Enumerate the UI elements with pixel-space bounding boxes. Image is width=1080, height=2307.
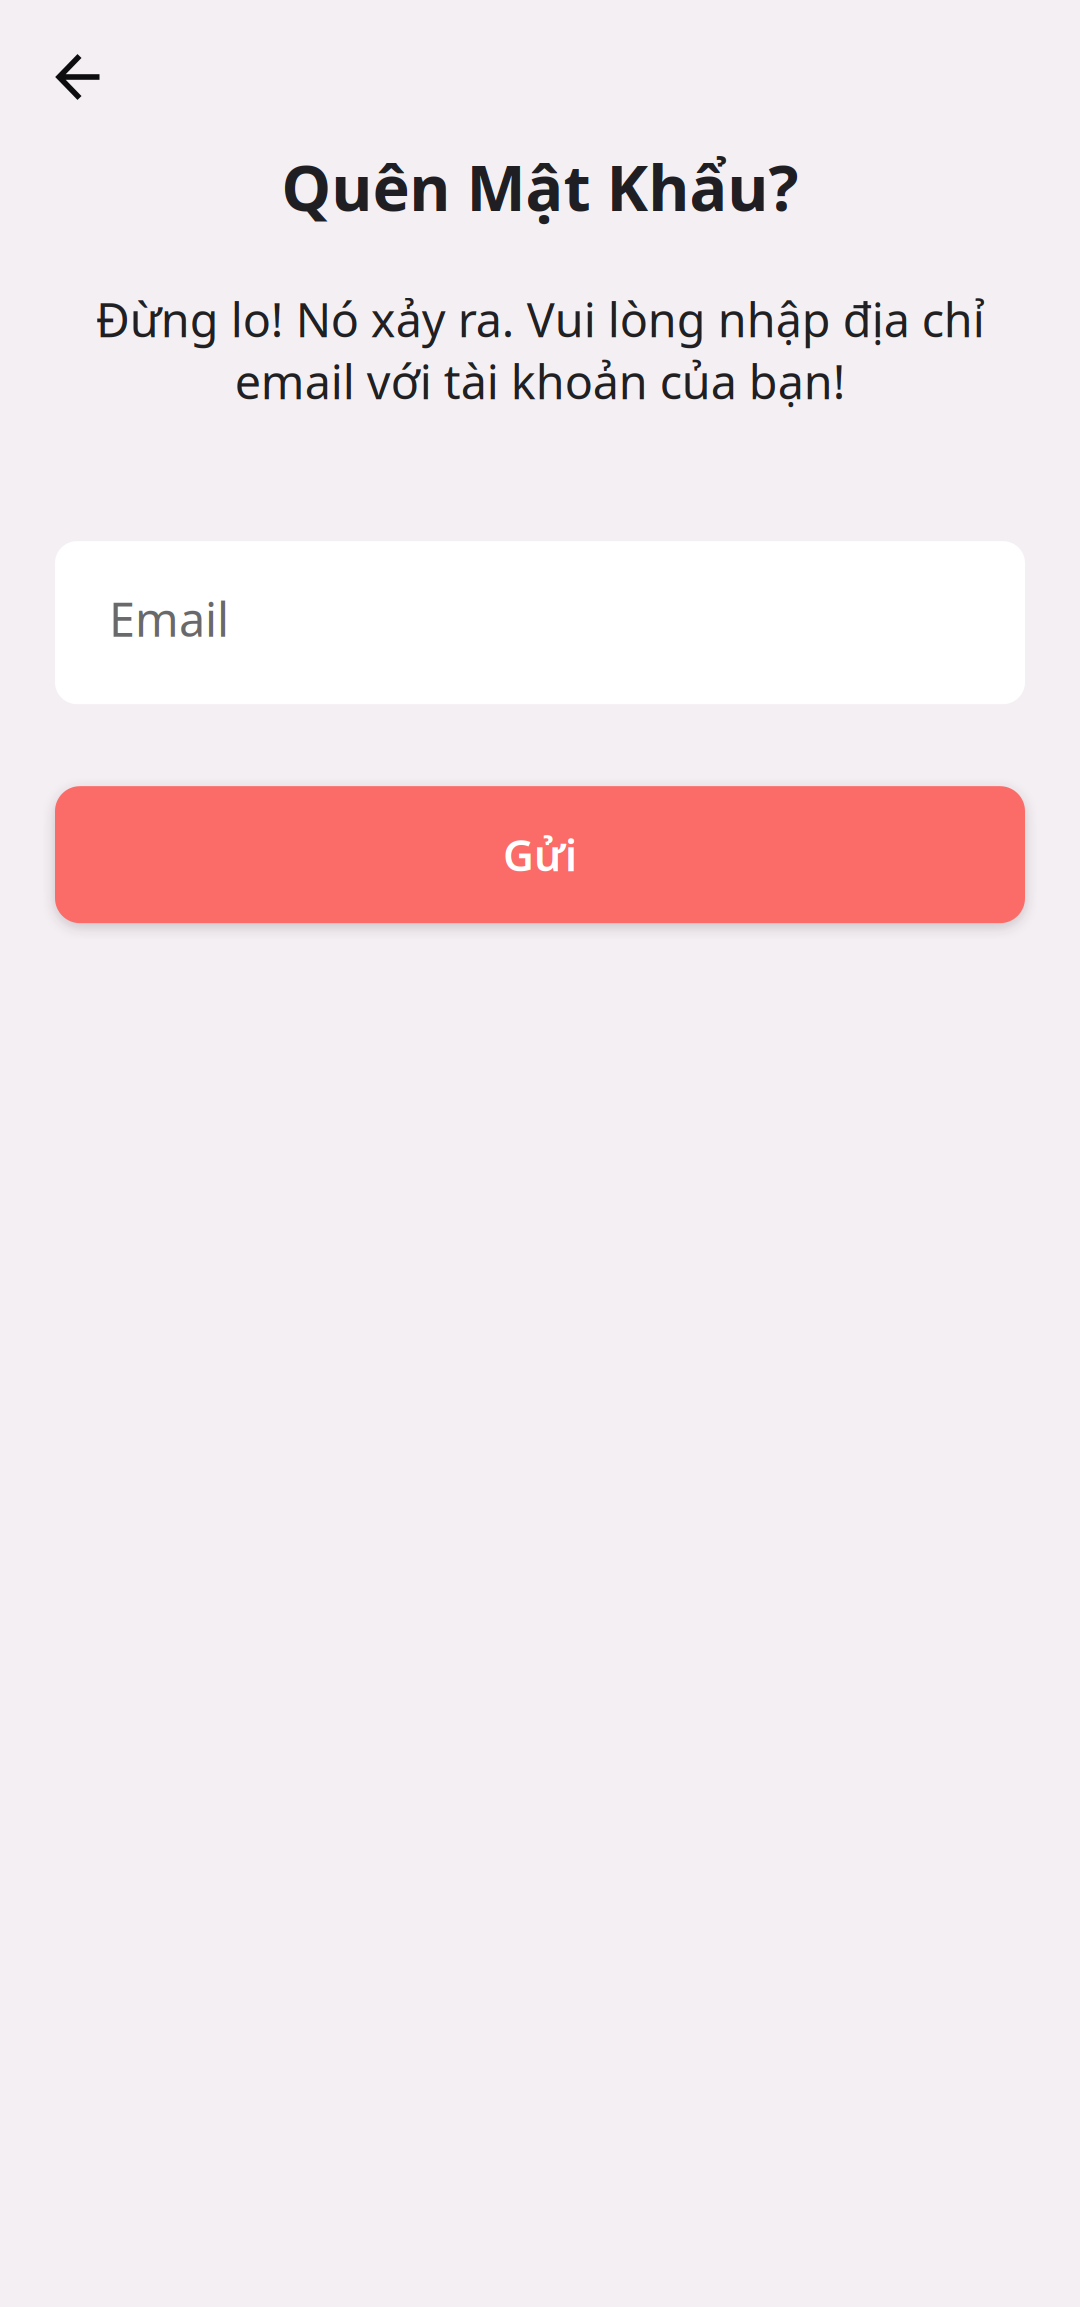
button[interactable]: Gửi — [0, 786, 1080, 923]
staticText: Quên Mật Khẩu? — [281, 145, 798, 228]
staticText: Email — [109, 588, 229, 650]
staticText: Gửi — [503, 826, 577, 883]
staticText: Đừng lo! Nó xảy ra. Vui lòng nhập địa ch… — [95, 288, 984, 412]
button[interactable]: Back — [0, 0, 126, 125]
button[interactable]: Email — [0, 541, 1080, 704]
